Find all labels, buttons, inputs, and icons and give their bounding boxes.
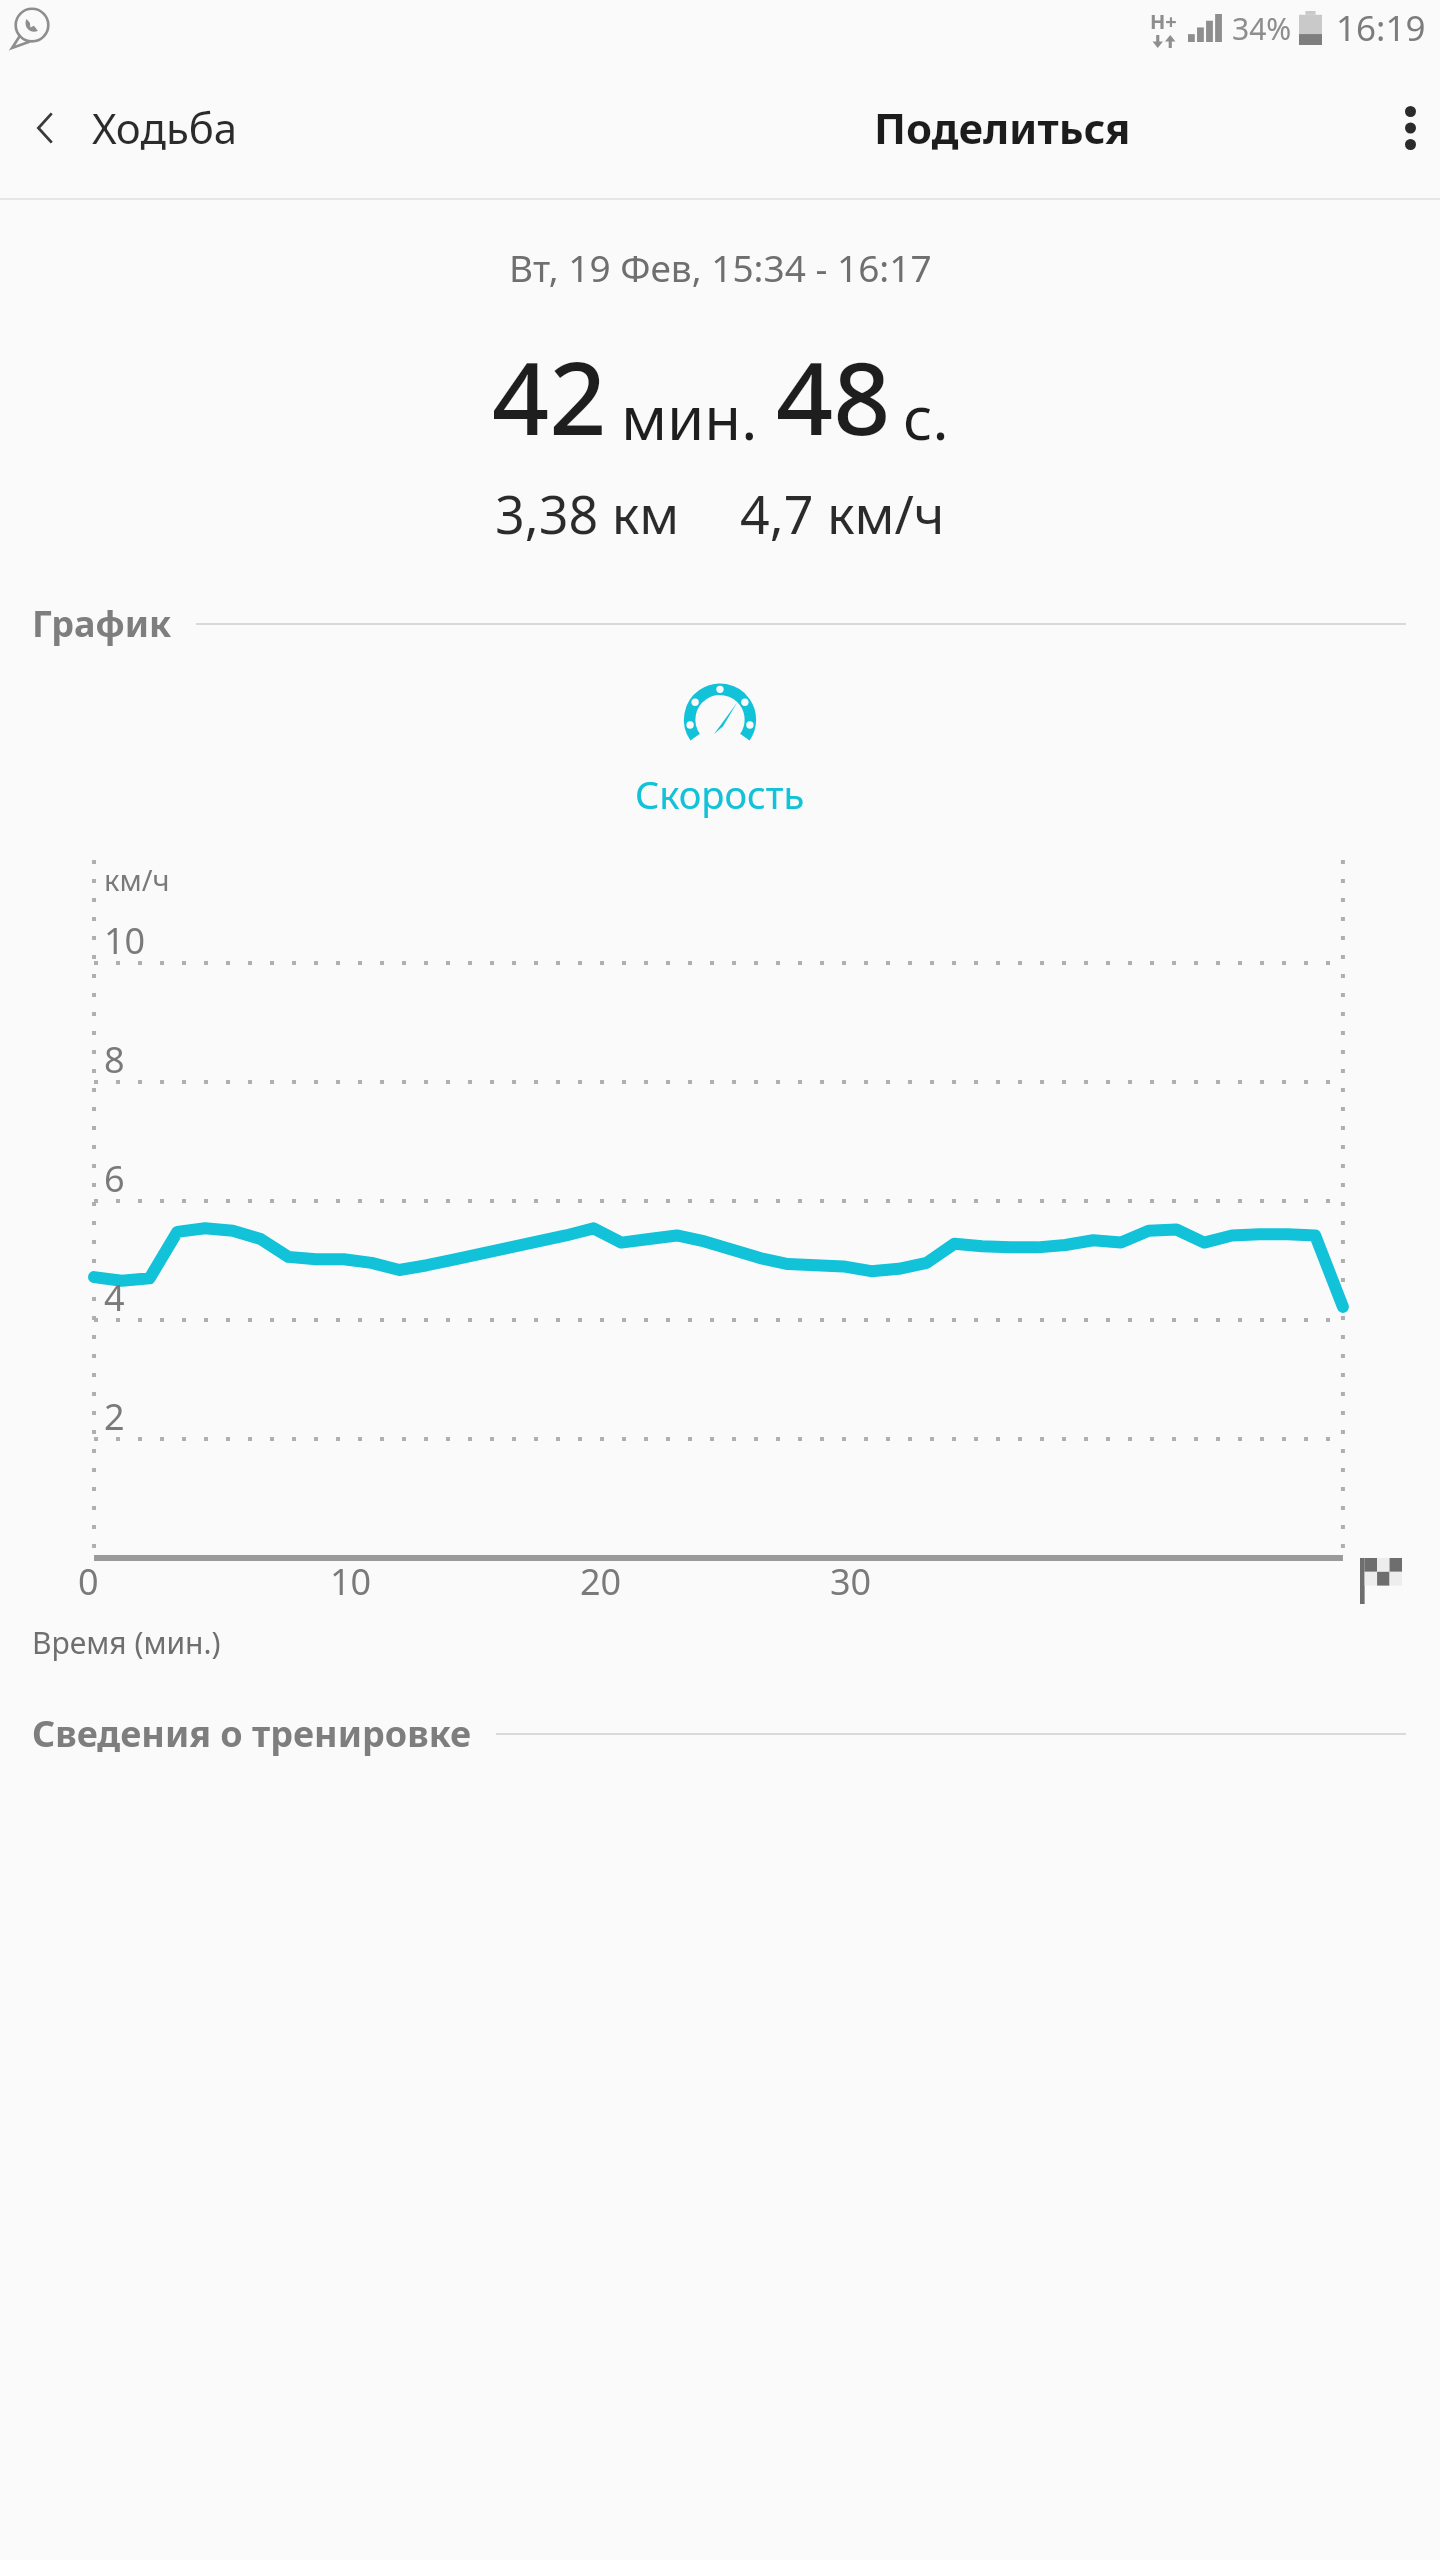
staticText: Вт, 19 Фев, 15:34 - 16:17	[509, 242, 932, 292]
staticText: мин.	[621, 376, 758, 458]
staticText: 4,7 км/ч	[740, 478, 945, 549]
other: Финиш	[1360, 1558, 1402, 1604]
staticText: км/ч	[104, 860, 170, 899]
staticText: 6	[104, 1154, 125, 1203]
staticText: График	[32, 599, 172, 648]
staticText: 8	[104, 1035, 125, 1084]
staticText: 4	[104, 1273, 125, 1322]
button[interactable]: Ещё	[1389, 82, 1440, 174]
other: Скорость	[674, 670, 766, 762]
staticText: 3,38 км	[495, 478, 680, 549]
button[interactable]: Назад	[0, 77, 252, 178]
staticText: Время (мин.)	[32, 1622, 221, 1663]
staticText: 30	[830, 1557, 872, 1606]
other: WhatsApp	[8, 4, 56, 52]
staticText: Скорость	[635, 768, 805, 820]
staticText: 10	[330, 1557, 372, 1606]
staticText: Ходьба	[92, 99, 238, 156]
staticText: 2	[104, 1392, 125, 1441]
staticText: 0	[78, 1557, 99, 1606]
staticText: 10	[104, 916, 146, 965]
staticText: 16:19	[1336, 4, 1426, 52]
staticText: 42	[492, 328, 607, 464]
button[interactable]: Поделиться	[858, 75, 1147, 180]
staticText: с.	[903, 376, 949, 458]
staticText: 48	[776, 328, 891, 464]
button[interactable]: Скорость	[0, 670, 1440, 820]
staticText: 20	[580, 1557, 622, 1606]
staticText: Сведения о тренировке	[32, 1709, 472, 1758]
other: Назад	[26, 108, 66, 148]
staticText: 34%	[1232, 8, 1292, 49]
staticText: Поделиться	[874, 99, 1131, 156]
staticText: H+	[1150, 8, 1177, 35]
